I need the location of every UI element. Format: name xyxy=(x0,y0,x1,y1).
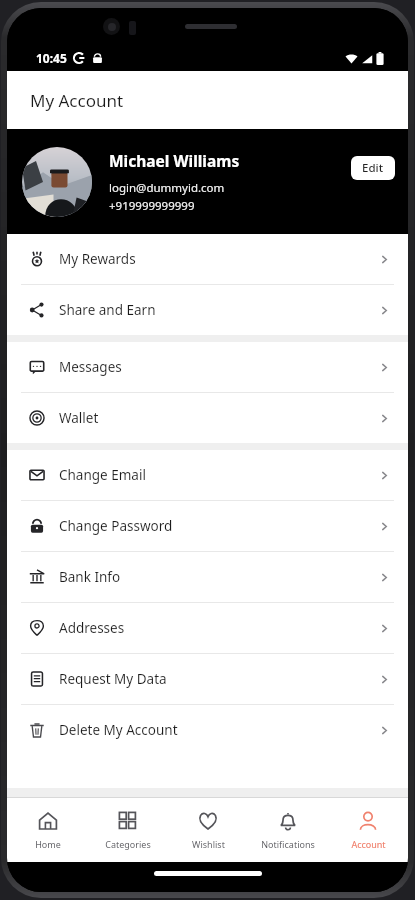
button[interactable]: Notifications xyxy=(248,798,328,862)
button[interactable]: Share and Earn xyxy=(7,285,408,335)
staticText: My Rewards xyxy=(59,250,379,268)
staticText: Account xyxy=(351,838,386,850)
button[interactable]: Messages xyxy=(7,342,408,392)
staticText: +919999999999 xyxy=(109,198,195,214)
button[interactable]: Wallet xyxy=(7,393,408,443)
button[interactable]: Account xyxy=(328,798,408,862)
button[interactable]: Delete My Account xyxy=(7,705,408,755)
button[interactable]: Bank Info xyxy=(7,552,408,602)
button[interactable]: Change Password xyxy=(7,501,408,551)
staticText: Messages xyxy=(59,358,379,376)
staticText: Notifications xyxy=(261,838,315,850)
button[interactable]: Home xyxy=(7,798,88,862)
staticText: login@dummyid.com xyxy=(109,180,225,196)
staticText: Edit xyxy=(362,160,384,176)
staticText: Change Password xyxy=(59,517,379,535)
button[interactable]: Change Email xyxy=(7,450,408,500)
button[interactable]: My Account xyxy=(7,71,408,129)
button[interactable]: Request My Data xyxy=(7,654,408,704)
button[interactable]: Wishlist xyxy=(168,798,248,862)
staticText: Home xyxy=(35,838,61,850)
button[interactable]: Addresses xyxy=(7,603,408,653)
staticText: Addresses xyxy=(59,619,379,637)
staticText: Michael Williams xyxy=(109,150,240,171)
staticText: Delete My Account xyxy=(59,721,379,739)
button[interactable]: My Rewards xyxy=(7,234,408,284)
staticText: My Account xyxy=(30,89,124,112)
staticText: Share and Earn xyxy=(59,301,379,319)
staticText: 10:45 xyxy=(36,50,67,66)
staticText: Wishlist xyxy=(192,838,225,850)
button[interactable]: Edit xyxy=(351,156,395,180)
staticText: Wallet xyxy=(59,409,379,427)
staticText: Categories xyxy=(105,838,151,850)
button[interactable]: Categories xyxy=(88,798,168,862)
staticText: Bank Info xyxy=(59,568,379,586)
staticText: Request My Data xyxy=(59,670,379,688)
staticText: Change Email xyxy=(59,466,379,484)
